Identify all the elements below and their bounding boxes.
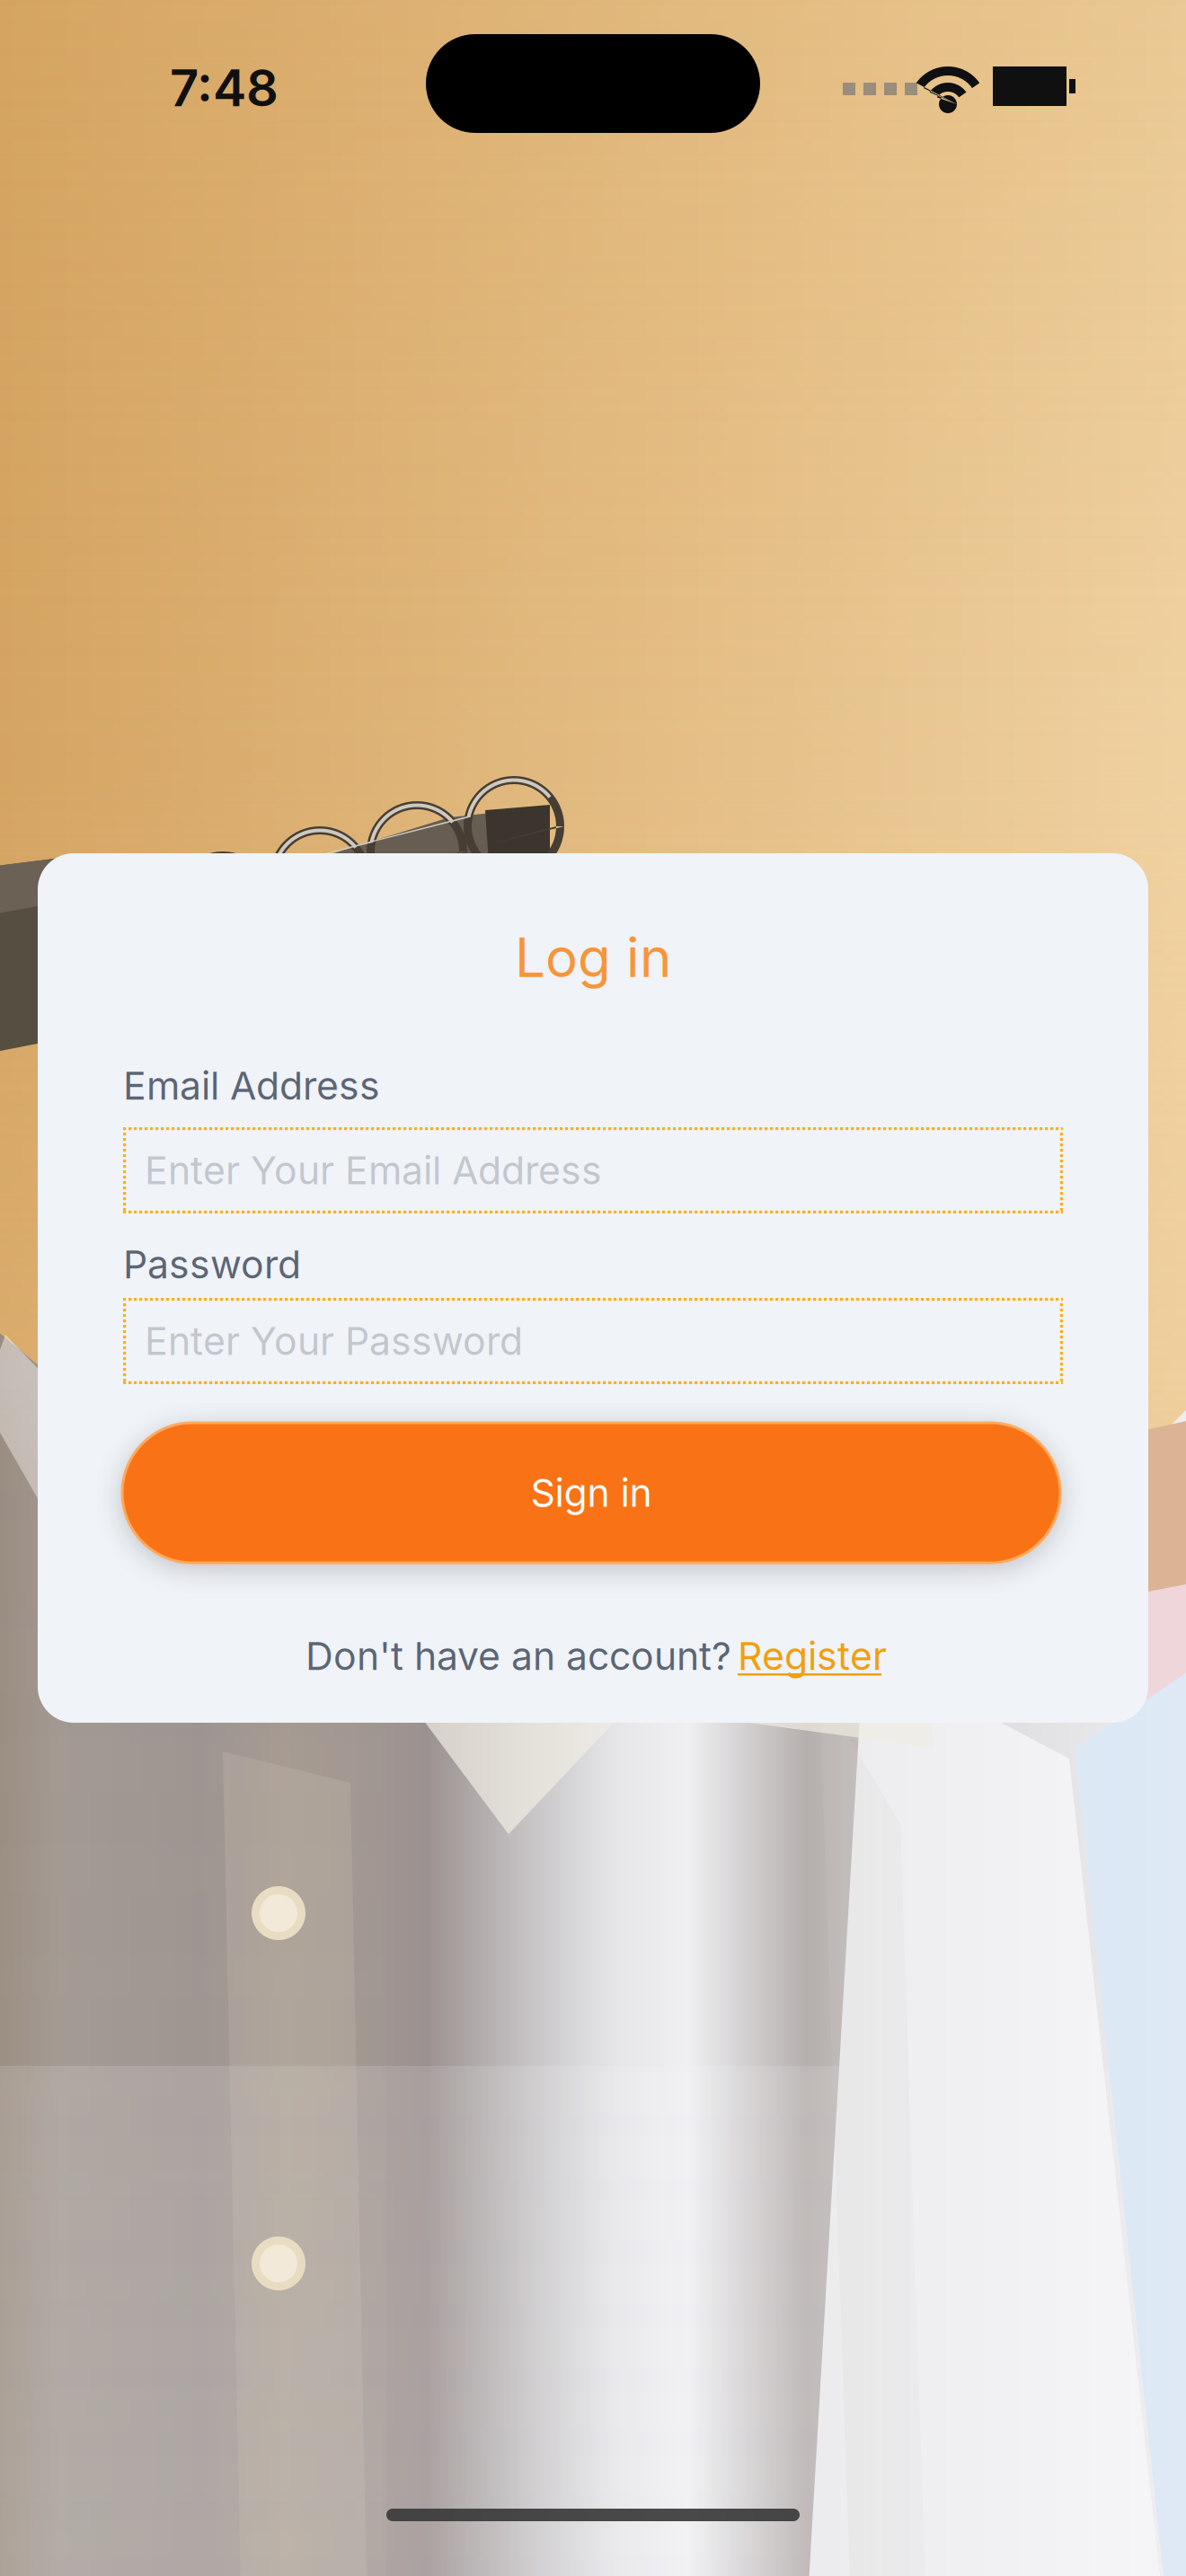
staticText: Sign in xyxy=(531,1470,652,1516)
button[interactable]: Sign in xyxy=(122,1423,1060,1563)
staticText: Enter Your Password xyxy=(145,1318,523,1364)
staticText: Password xyxy=(123,1241,301,1288)
button[interactable]: Don't have an account? xyxy=(305,1633,881,1683)
staticText: Email Address xyxy=(123,1063,380,1109)
staticText: Register xyxy=(738,1633,887,1679)
staticText: Enter Your Email Address xyxy=(145,1147,602,1194)
staticText: Don't have an account? xyxy=(305,1633,731,1679)
staticText: Log in xyxy=(515,925,671,990)
staticText: 7:48 xyxy=(170,57,279,118)
